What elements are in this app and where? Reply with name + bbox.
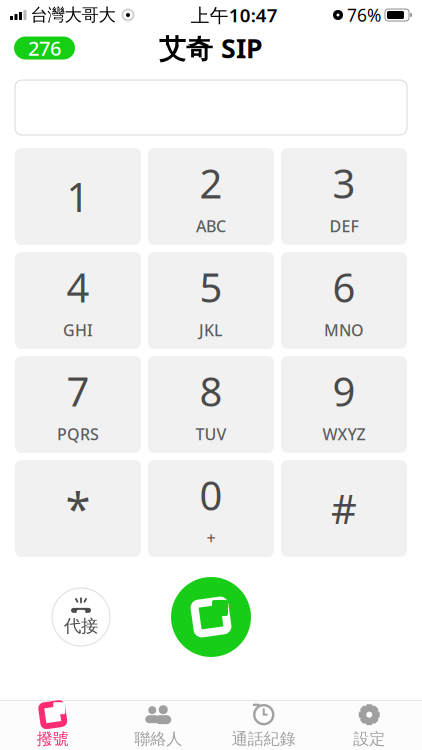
button[interactable]: 撥號 [0, 698, 105, 750]
button[interactable]: 代接 [52, 588, 110, 646]
staticText: 5 [199, 260, 222, 313]
button[interactable]: # [281, 460, 407, 557]
button[interactable]: 9 [281, 356, 407, 453]
staticText: 2 [199, 156, 222, 209]
staticText: PQRS [57, 423, 99, 445]
button[interactable]: 4 [15, 252, 141, 349]
button[interactable]: 2 [148, 148, 274, 245]
staticText: 0 [199, 468, 222, 521]
staticText: 4 [66, 260, 89, 313]
button[interactable]: Call [171, 577, 251, 657]
button[interactable]: 6 [281, 252, 407, 349]
staticText: 3 [332, 156, 355, 209]
button[interactable]: 8 [148, 356, 274, 453]
staticText: + [206, 527, 215, 549]
staticText: MNO [324, 319, 364, 341]
button[interactable]: 通話紀錄 [211, 698, 316, 750]
staticText: 撥號 [37, 729, 69, 749]
button[interactable]: 0 [148, 460, 274, 557]
button[interactable]: 3 [281, 148, 407, 245]
staticText: 代接 [64, 615, 98, 637]
button[interactable]: 5 [148, 252, 274, 349]
staticText: GHI [63, 319, 93, 341]
staticText: 聯絡人 [134, 729, 182, 749]
button[interactable]: 聯絡人 [105, 698, 211, 750]
staticText: DEF [329, 215, 358, 237]
button[interactable]: * [15, 460, 141, 557]
staticText: WXYZ [322, 423, 365, 445]
staticText: ABC [196, 215, 226, 237]
staticText: 1 [66, 170, 89, 223]
button[interactable]: 1 [15, 148, 141, 245]
button[interactable]: 7 [15, 356, 141, 453]
button[interactable]: Extension 276 [14, 36, 75, 59]
staticText: 76% [347, 3, 381, 26]
staticText: 上午10:47 [191, 3, 278, 27]
staticText: * [65, 478, 90, 539]
staticText: 台灣大哥大 [30, 4, 115, 26]
staticText: 艾奇 SIP [159, 30, 263, 66]
staticText: JKL [199, 319, 223, 341]
staticText: 6 [332, 260, 355, 313]
staticText: 9 [332, 364, 355, 417]
staticText: 7 [66, 364, 89, 417]
staticText: 通話紀錄 [232, 729, 296, 749]
staticText: # [331, 482, 357, 535]
staticText: TUV [195, 423, 226, 445]
staticText: 設定 [353, 729, 385, 749]
staticText: 8 [199, 364, 222, 417]
button[interactable]: 設定 [316, 698, 422, 750]
staticText: 276 [28, 35, 61, 61]
